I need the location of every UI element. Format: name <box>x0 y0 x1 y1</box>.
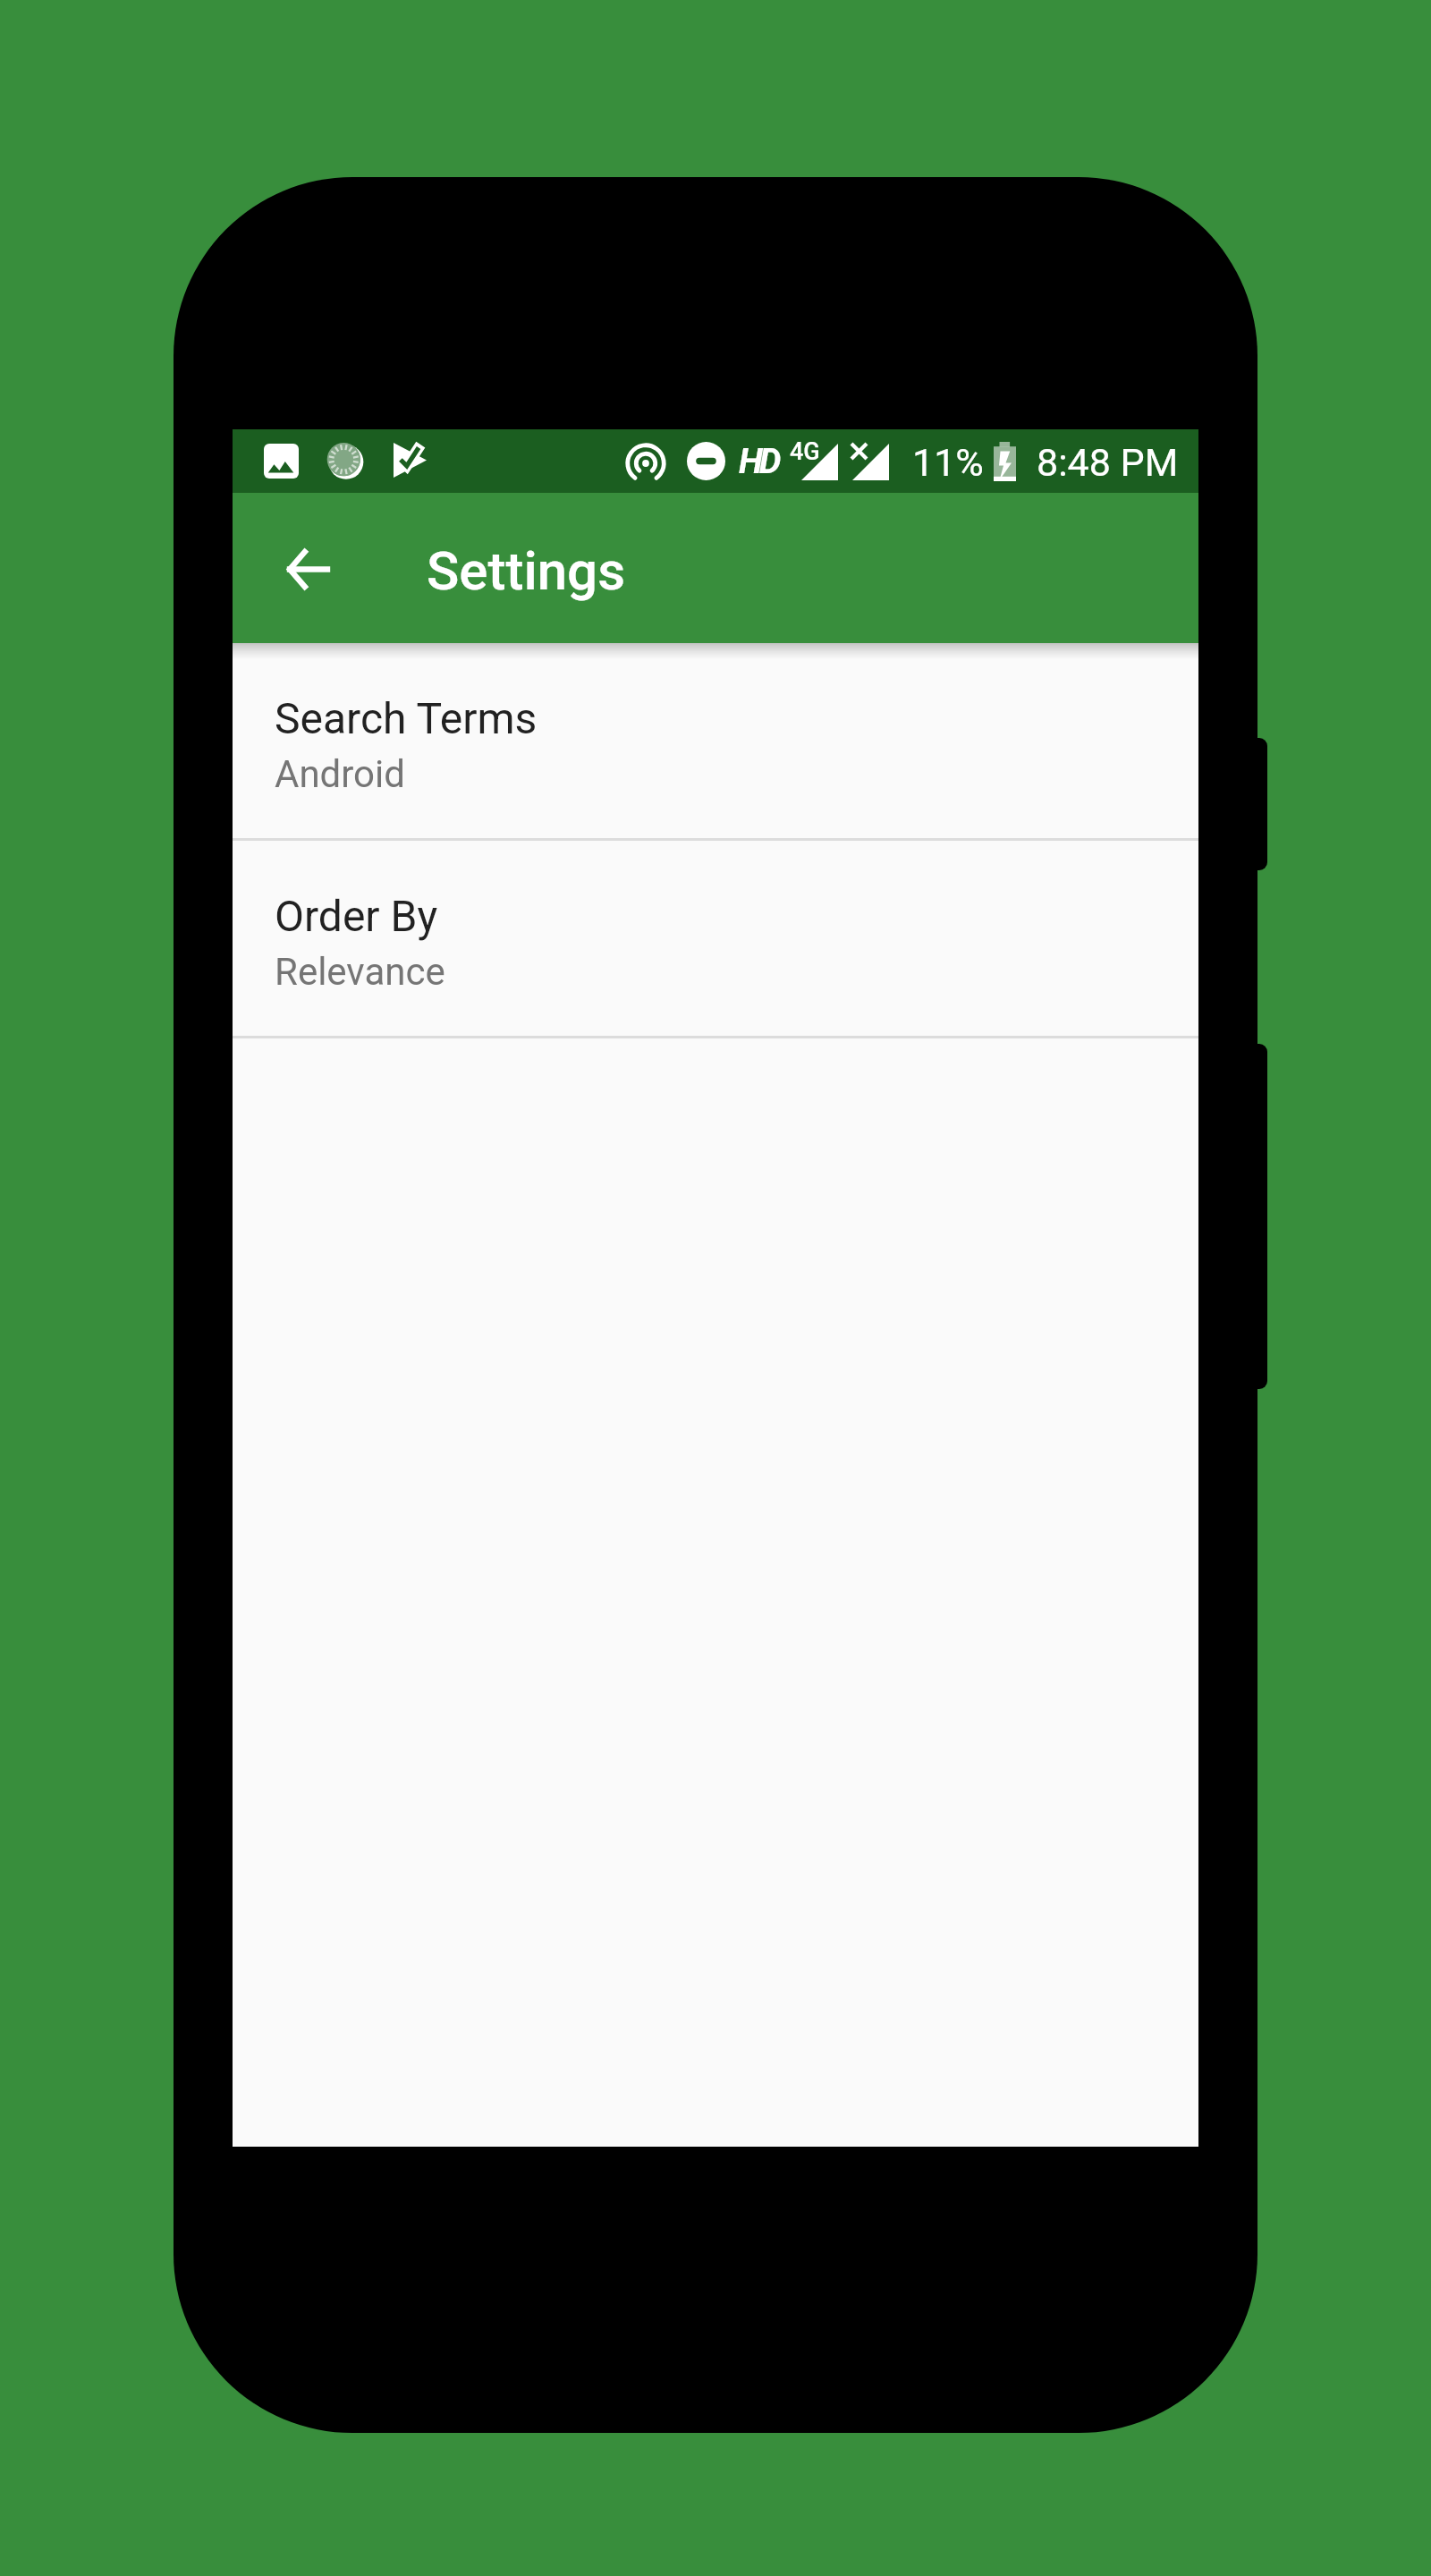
staticText: Search Terms <box>275 693 538 743</box>
button[interactable]: Search Terms <box>233 643 1198 838</box>
staticText: Android <box>275 752 405 796</box>
button[interactable]: Navigate up <box>259 520 358 618</box>
staticText: HD <box>739 441 778 482</box>
staticText: Order By <box>275 891 438 941</box>
staticText: 11% <box>912 440 984 485</box>
staticText: Relevance <box>275 950 445 994</box>
staticText: Settings <box>427 539 626 602</box>
button[interactable]: Order By <box>233 841 1198 1036</box>
staticText: 8:48 PM <box>1037 440 1179 485</box>
staticText: 4G <box>790 437 820 466</box>
